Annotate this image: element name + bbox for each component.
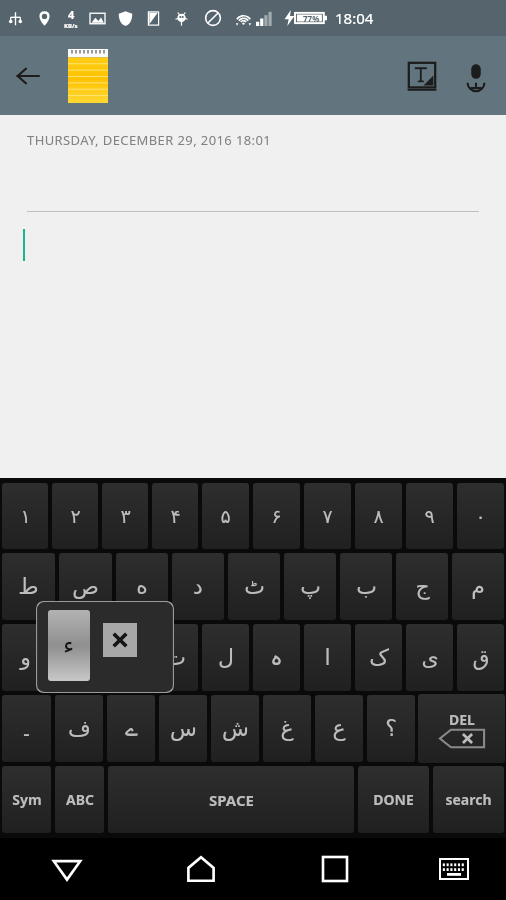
button[interactable]: ۲ (52, 483, 98, 549)
staticText: KB/s (64, 22, 78, 30)
staticText: THURSDAY, DECEMBER 29, 2016 18:01 (27, 131, 272, 149)
staticText: ۔ (20, 716, 33, 742)
button[interactable]: ا (304, 624, 351, 691)
button[interactable]: SPACE (108, 766, 354, 833)
button[interactable]: ف (55, 695, 103, 762)
button[interactable]: ے (107, 695, 155, 762)
button[interactable]: ک (355, 624, 402, 691)
button[interactable]: ۳ (102, 483, 148, 549)
staticText: پ (300, 574, 321, 600)
staticText: ا (324, 645, 331, 671)
button[interactable]: ق (457, 624, 504, 691)
button[interactable]: غ (263, 695, 311, 762)
staticText: ء (63, 632, 75, 660)
button[interactable]: Switch keyboard (402, 838, 506, 900)
staticText: ج (415, 574, 430, 600)
staticText: غ (280, 716, 294, 742)
button[interactable]: پ (284, 553, 336, 620)
staticText: ۸ (373, 505, 384, 527)
staticText: ہ (270, 645, 283, 671)
button[interactable]: ہ (253, 624, 300, 691)
staticText: ع (332, 716, 346, 742)
button[interactable]: ۵ (202, 483, 249, 549)
button[interactable]: ۰ (457, 483, 504, 549)
button[interactable]: DONE (358, 766, 429, 833)
button[interactable]: ص (59, 553, 112, 620)
button[interactable]: و (2, 624, 48, 691)
button[interactable]: Text formatting (394, 48, 450, 104)
staticText: د (193, 574, 203, 600)
button[interactable]: ۸ (355, 483, 402, 549)
staticText: ۳ (120, 505, 131, 527)
staticText: ن (117, 645, 134, 671)
button[interactable]: ABC (55, 766, 104, 833)
staticText: ف (68, 716, 91, 742)
button[interactable]: ج (396, 553, 448, 620)
staticText: ۴ (170, 505, 181, 527)
staticText: م (471, 574, 485, 600)
staticText: Sym (12, 790, 42, 809)
button[interactable]: ن (102, 624, 148, 691)
button[interactable]: ت (152, 624, 198, 691)
staticText: DEL (449, 710, 475, 729)
button[interactable]: س (159, 695, 207, 762)
button[interactable]: ش (211, 695, 259, 762)
button[interactable]: ل (202, 624, 249, 691)
button[interactable]: Sym (2, 766, 51, 833)
button[interactable]: ۔ (2, 695, 51, 762)
staticText: 18:04 (335, 8, 374, 28)
button[interactable]: search (433, 766, 504, 833)
button[interactable]: ع (315, 695, 363, 762)
button[interactable]: Back (0, 48, 56, 104)
staticText: ت (165, 645, 186, 671)
button[interactable]: ۹ (406, 483, 453, 549)
staticText: ABC (66, 790, 94, 809)
staticText: ص (72, 574, 99, 600)
button[interactable]: د (172, 553, 224, 620)
button[interactable]: Home (134, 838, 268, 900)
button[interactable]: Delete (418, 694, 505, 763)
button[interactable]: ه (116, 553, 168, 620)
button[interactable]: ط (2, 553, 55, 620)
staticText: ۹ (424, 505, 435, 527)
button[interactable]: ب (340, 553, 392, 620)
staticText: ۷ (322, 505, 333, 527)
staticText: ؟ (385, 716, 397, 742)
staticText: ق (472, 645, 490, 671)
button[interactable]: ر (52, 624, 98, 691)
button[interactable]: م (452, 553, 504, 620)
staticText: ش (222, 716, 249, 742)
button[interactable]: ۶ (253, 483, 300, 549)
staticText: ی (421, 645, 439, 671)
staticText: ے (125, 716, 138, 742)
button[interactable]: Notepad (60, 36, 116, 115)
staticText: DONE (373, 790, 414, 809)
staticText: ط (18, 574, 39, 600)
staticText: ۱ (20, 505, 31, 527)
staticText: SPACE (209, 790, 254, 810)
button[interactable]: ء (48, 610, 90, 681)
button[interactable]: ۱ (2, 483, 48, 549)
staticText: ۲ (70, 505, 81, 527)
button[interactable]: ۷ (304, 483, 351, 549)
staticText: س (170, 716, 197, 742)
staticText: ٹ (244, 574, 265, 600)
button[interactable]: Close (103, 623, 137, 657)
button[interactable]: ٹ (228, 553, 280, 620)
button[interactable]: Voice input (450, 48, 502, 104)
staticText: ۶ (271, 505, 282, 527)
staticText: ب (356, 574, 377, 600)
staticText: search (445, 790, 492, 809)
button[interactable]: ۴ (152, 483, 198, 549)
staticText: 4 (68, 7, 75, 22)
button[interactable]: ی (406, 624, 453, 691)
staticText: ل (218, 645, 234, 671)
button[interactable]: Hide keyboard (0, 838, 134, 900)
staticText: ر (70, 645, 81, 671)
staticText: ک (369, 645, 389, 671)
staticText: و (20, 645, 31, 671)
staticText: ۰ (475, 505, 486, 527)
button[interactable]: Recents (268, 838, 402, 900)
staticText: ه (136, 574, 148, 600)
button[interactable]: ؟ (367, 695, 415, 762)
